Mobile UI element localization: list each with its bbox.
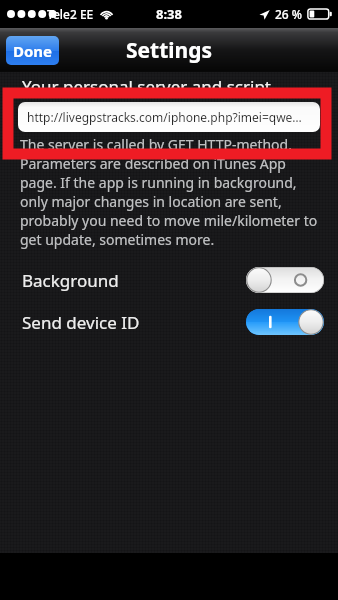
staticText: Send device ID <box>22 311 140 334</box>
button[interactable]: Switch on <box>246 309 324 335</box>
staticText: Background <box>22 269 119 292</box>
button[interactable]: Switch off <box>246 267 324 293</box>
staticText: Your personal server and script <box>22 75 271 98</box>
button[interactable]: Done <box>6 36 59 65</box>
staticText: Settings <box>126 36 213 65</box>
staticText: The server is called by GET HTTP-method.… <box>20 135 324 249</box>
staticText: 8:38 <box>156 5 182 23</box>
staticText: Tele2 EE <box>47 6 94 22</box>
button[interactable]: http://livegpstracks.com/iphone.php?imei… <box>18 102 320 132</box>
button[interactable]: Background <box>0 263 338 297</box>
staticText: http://livegpstracks.com/iphone.php?imei… <box>27 109 302 125</box>
button[interactable]: Send device ID <box>0 305 338 339</box>
staticText: Done <box>13 41 53 61</box>
staticText: 26 % <box>275 6 303 22</box>
